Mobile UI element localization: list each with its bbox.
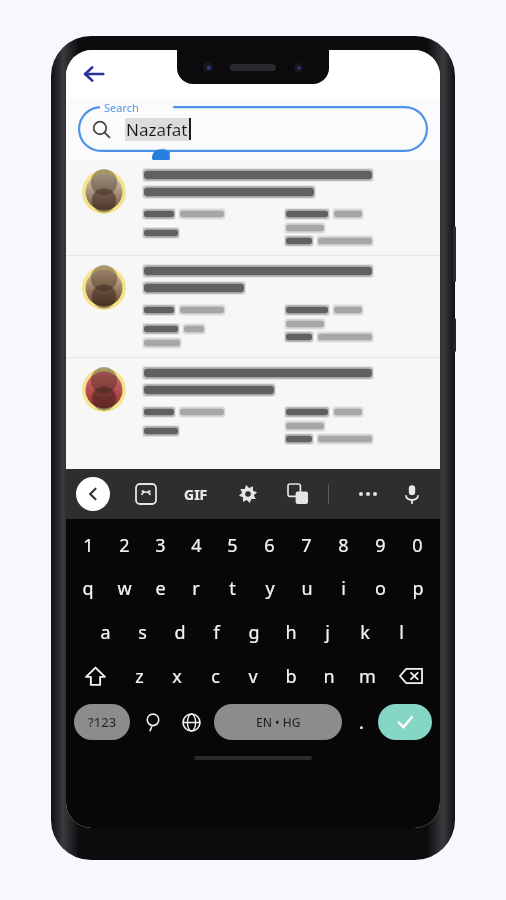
staticText: 2 (119, 533, 130, 558)
button[interactable]: e (142, 569, 178, 607)
button[interactable]: z (120, 657, 158, 695)
button[interactable]: f (198, 613, 235, 651)
staticText: v (248, 664, 258, 689)
staticText: t (229, 576, 236, 601)
staticText: x (172, 664, 182, 689)
button[interactable] (66, 358, 440, 453)
button[interactable]: Search (378, 704, 432, 740)
button[interactable]: k (346, 613, 383, 651)
staticText: h (285, 620, 297, 645)
button[interactable]: p (399, 569, 436, 607)
button[interactable]: v (234, 657, 272, 695)
staticText: Search Scholars (190, 63, 316, 86)
button[interactable]: 8 (325, 527, 362, 563)
staticText: ?123 (88, 713, 117, 731)
button[interactable] (66, 160, 440, 255)
staticText: 5 (227, 533, 238, 558)
button[interactable]: r (178, 569, 214, 607)
button[interactable]: Emoji (136, 705, 170, 739)
staticText: n (323, 664, 335, 689)
staticText: 6 (264, 533, 275, 558)
staticText: 7 (301, 533, 312, 558)
button[interactable]: o (362, 569, 399, 607)
button[interactable]: . (348, 704, 374, 740)
button[interactable]: 0 (399, 527, 436, 563)
button[interactable]: 1 (70, 527, 106, 563)
staticText: 1 (83, 533, 94, 558)
staticText: j (325, 620, 330, 645)
staticText: 0 (412, 533, 423, 558)
staticText: u (301, 576, 313, 601)
button[interactable]: a (86, 613, 124, 651)
staticText: i (341, 576, 346, 601)
button[interactable]: q (70, 569, 106, 607)
staticText: y (265, 576, 275, 601)
button[interactable]: 3 (142, 527, 178, 563)
button[interactable]: More options (352, 478, 384, 510)
button[interactable]: Shift (70, 657, 120, 695)
staticText: Nazafat (126, 118, 188, 141)
staticText: EN • HG (256, 714, 301, 730)
button[interactable]: Change language (174, 705, 208, 739)
staticText: p (412, 576, 424, 601)
button[interactable]: Stickers (130, 478, 162, 510)
button[interactable]: 5 (214, 527, 251, 563)
button[interactable]: m (348, 657, 386, 695)
button[interactable]: 7 (288, 527, 325, 563)
button[interactable] (66, 256, 440, 357)
staticText: 4 (191, 533, 202, 558)
staticText: k (360, 620, 370, 645)
button[interactable]: x (158, 657, 196, 695)
staticText: GIF (184, 485, 208, 504)
staticText: o (375, 576, 386, 601)
staticText: c (211, 664, 220, 689)
button[interactable]: Translate (282, 478, 314, 510)
staticText: Search (104, 100, 139, 115)
button[interactable]: EN • HG (214, 704, 342, 740)
button[interactable]: d (161, 613, 198, 651)
button[interactable]: Backspace (386, 657, 436, 695)
button[interactable]: y (251, 569, 288, 607)
staticText: l (399, 620, 404, 645)
button[interactable]: t (214, 569, 251, 607)
button[interactable]: 2 (106, 527, 142, 563)
button[interactable]: h (272, 613, 309, 651)
button[interactable]: b (272, 657, 310, 695)
staticText: m (359, 664, 376, 689)
button[interactable]: w (106, 569, 142, 607)
button[interactable]: Close toolbar (76, 477, 110, 511)
staticText: e (155, 576, 166, 601)
button[interactable]: 6 (251, 527, 288, 563)
button[interactable]: j (309, 613, 346, 651)
button[interactable]: g (235, 613, 272, 651)
staticText: a (100, 620, 111, 645)
staticText: 9 (375, 533, 386, 558)
button[interactable]: 4 (178, 527, 214, 563)
staticText: 8 (338, 533, 349, 558)
staticText: s (138, 620, 147, 645)
staticText: w (117, 576, 132, 601)
button[interactable]: Keyboard settings (232, 478, 264, 510)
staticText: d (174, 620, 186, 645)
button[interactable]: u (288, 569, 325, 607)
button[interactable]: l (383, 613, 420, 651)
button[interactable]: i (325, 569, 362, 607)
button[interactable]: ?123 (74, 704, 130, 740)
staticText: . (359, 710, 364, 735)
button[interactable]: n (310, 657, 348, 695)
staticText: q (82, 576, 94, 601)
button[interactable]: GIF (178, 479, 214, 510)
staticText: b (285, 664, 297, 689)
staticText: z (135, 664, 144, 689)
staticText: f (213, 620, 220, 645)
staticText: 3 (155, 533, 166, 558)
button[interactable]: Voice input (396, 478, 428, 510)
staticText: g (248, 620, 260, 645)
button[interactable]: c (196, 657, 234, 695)
button[interactable]: 9 (362, 527, 399, 563)
button[interactable]: Back (74, 54, 114, 94)
staticText: r (192, 576, 200, 601)
button[interactable]: s (124, 613, 161, 651)
